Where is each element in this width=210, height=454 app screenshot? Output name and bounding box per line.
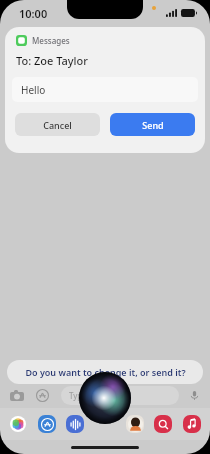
button[interactable]: Do you want to change it, or send it?	[7, 360, 203, 384]
staticText: Type to Siri	[69, 390, 111, 401]
staticText: Hello	[21, 83, 46, 97]
button[interactable]: Send	[110, 113, 195, 136]
button[interactable]: Contacts	[126, 415, 144, 433]
button[interactable]: Photos	[9, 415, 27, 433]
button[interactable]: Siri	[79, 372, 131, 424]
staticText: Do you want to change it, or send it?	[25, 366, 186, 378]
staticText: Cancel	[43, 119, 72, 131]
button[interactable]: Search	[154, 415, 172, 433]
staticText: To: Zoe Taylor	[16, 53, 88, 68]
button[interactable]: Camera	[8, 387, 25, 404]
button[interactable]: App Store	[34, 387, 51, 404]
button[interactable]: Type to Siri	[61, 386, 179, 405]
staticText: Send	[142, 119, 164, 131]
button[interactable]: Dictate	[187, 388, 202, 403]
button[interactable]: Cancel	[15, 113, 100, 136]
staticText: 10:00	[19, 6, 48, 21]
button[interactable]: Music	[183, 415, 201, 433]
button[interactable]: Podcasts	[66, 415, 84, 433]
staticText: Messages	[32, 35, 70, 46]
button[interactable]: App Store	[38, 415, 56, 433]
